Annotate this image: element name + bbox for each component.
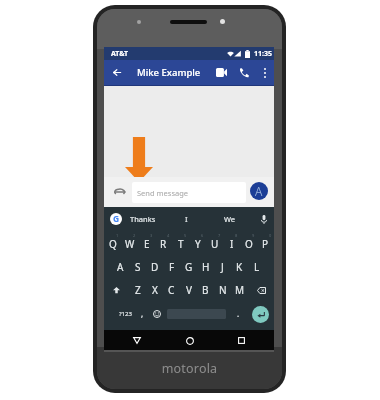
button[interactable]: B	[197, 278, 214, 302]
staticText: Send message	[137, 188, 189, 198]
button[interactable]: Shift	[104, 278, 129, 302]
staticText: F	[169, 260, 175, 274]
staticText: D	[151, 260, 159, 274]
button[interactable]: U	[206, 232, 223, 255]
staticText: W	[125, 237, 135, 251]
button[interactable]: Emoji	[149, 302, 165, 326]
button[interactable]: G	[180, 255, 197, 278]
staticText: Y	[195, 237, 201, 251]
staticText: A	[255, 183, 263, 199]
staticText: X	[152, 283, 158, 297]
staticText: A	[117, 260, 124, 274]
button[interactable]: ,	[135, 302, 150, 326]
button[interactable]: Z	[129, 278, 146, 302]
button[interactable]: M	[231, 278, 248, 302]
staticText: 3	[150, 233, 153, 238]
button[interactable]: I	[223, 232, 240, 255]
button[interactable]: A	[112, 255, 129, 278]
staticText: P	[262, 237, 269, 251]
staticText: 1	[116, 233, 119, 238]
staticText: .	[237, 308, 240, 319]
staticText: 7	[218, 233, 221, 238]
staticText: G	[185, 260, 193, 274]
staticText: 11:35	[254, 49, 272, 59]
button[interactable]: W	[121, 232, 138, 255]
button[interactable]: Voice input	[257, 212, 271, 226]
button[interactable]: ?123	[113, 302, 137, 326]
staticText: 9	[252, 233, 255, 238]
staticText: V	[186, 283, 192, 297]
button[interactable]: Call	[232, 60, 255, 85]
button[interactable]: Attach	[113, 185, 127, 198]
staticText: 0	[269, 233, 272, 238]
button[interactable]: F	[163, 255, 180, 278]
button[interactable]: Recent apps	[232, 331, 251, 350]
button[interactable]: E	[138, 232, 155, 255]
staticText: We	[224, 214, 236, 224]
button[interactable]: X	[146, 278, 163, 302]
staticText: 4	[167, 233, 170, 238]
staticText: 5	[184, 233, 187, 238]
button[interactable]: N	[214, 278, 231, 302]
staticText: E	[144, 237, 150, 251]
staticText: Z	[135, 283, 141, 297]
button[interactable]: H	[197, 255, 214, 278]
staticText: AT&T	[111, 49, 129, 59]
staticText: Q	[109, 237, 117, 251]
button[interactable]: Enter	[248, 302, 273, 326]
staticText: B	[202, 283, 209, 297]
button[interactable]: Back	[127, 331, 146, 350]
staticText: R	[160, 237, 167, 251]
button[interactable]: Y	[189, 232, 206, 255]
staticText: I	[185, 214, 188, 224]
staticText: ?123	[119, 310, 132, 318]
staticText: 6	[201, 233, 204, 238]
staticText: motorola	[93, 360, 286, 377]
button[interactable]: Backspace	[248, 278, 274, 302]
staticText: K	[236, 260, 243, 274]
staticText: O	[245, 237, 253, 251]
button[interactable]: O	[240, 232, 257, 255]
staticText: I	[230, 237, 234, 251]
staticText: Mike Example	[137, 66, 201, 79]
staticText: T	[178, 237, 184, 251]
staticText: 8	[235, 233, 238, 238]
button[interactable]: Q	[104, 232, 121, 255]
staticText: C	[168, 283, 175, 297]
button[interactable]: T	[172, 232, 189, 255]
button[interactable]: R	[155, 232, 172, 255]
button[interactable]: V	[180, 278, 197, 302]
button[interactable]: Back	[104, 60, 130, 85]
button[interactable]: Home	[180, 331, 199, 350]
staticText: G	[113, 213, 120, 225]
staticText: J	[221, 260, 224, 274]
staticText: Thanks	[130, 214, 156, 224]
button[interactable]: K	[231, 255, 248, 278]
staticText: S	[135, 260, 141, 274]
button[interactable]: A	[250, 182, 268, 200]
button[interactable]: Space	[166, 302, 227, 326]
staticText: U	[211, 237, 219, 251]
staticText: L	[254, 260, 260, 274]
button[interactable]: Send message	[132, 182, 246, 203]
button[interactable]: L	[248, 255, 265, 278]
button[interactable]: D	[146, 255, 163, 278]
button[interactable]: More options	[255, 60, 274, 85]
button[interactable]: J	[214, 255, 231, 278]
button[interactable]: S	[129, 255, 146, 278]
button[interactable]: Video call	[210, 60, 232, 85]
staticText: M	[235, 283, 245, 297]
button[interactable]: .	[231, 302, 246, 326]
button[interactable]: C	[163, 278, 180, 302]
staticText: H	[202, 260, 210, 274]
button[interactable]: P	[257, 232, 274, 255]
staticText: ,	[141, 308, 144, 319]
staticText: N	[219, 283, 227, 297]
staticText: 2	[133, 233, 136, 238]
